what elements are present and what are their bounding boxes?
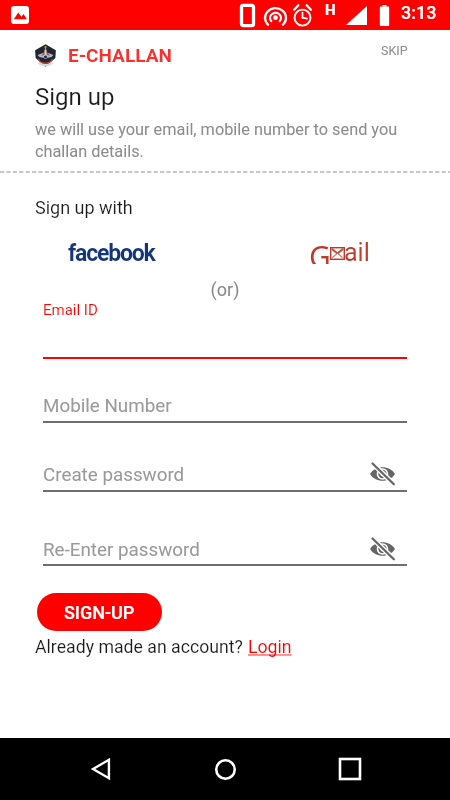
- staticText: Login: [248, 637, 292, 658]
- staticText: Mobile Number: [43, 395, 172, 417]
- staticText: (or): [0, 279, 450, 300]
- button[interactable]: Back: [77, 745, 125, 793]
- staticText: Already made an account?: [35, 637, 248, 658]
- staticText: G: [309, 236, 331, 264]
- button[interactable]: facebook: [60, 232, 163, 275]
- staticText: 3:13: [401, 2, 437, 23]
- staticText: Email ID: [43, 301, 98, 319]
- staticText: Sign up with: [35, 197, 133, 218]
- button[interactable]: Recents: [326, 745, 374, 793]
- staticText: Create password: [43, 464, 185, 486]
- button[interactable]: G: [302, 230, 376, 274]
- staticText: Re-Enter password: [43, 539, 200, 561]
- staticText: Sign up: [35, 83, 115, 111]
- button[interactable]: Toggle password visibility: [369, 461, 396, 486]
- button[interactable]: SIGN-UP: [37, 593, 162, 631]
- staticText: we will use your email, mobile number to…: [35, 120, 409, 161]
- staticText: ail: [344, 238, 370, 266]
- button[interactable]: SKIP: [375, 37, 414, 64]
- staticText: E-CHALLAN: [68, 44, 172, 66]
- staticText: facebook: [68, 240, 155, 267]
- staticText: H: [325, 1, 336, 19]
- staticText: SIGN-UP: [64, 602, 135, 623]
- staticText: SKIP: [381, 43, 408, 58]
- button[interactable]: Toggle password visibility: [369, 536, 396, 561]
- button[interactable]: Home: [201, 745, 249, 793]
- button[interactable]: Login: [248, 637, 292, 658]
